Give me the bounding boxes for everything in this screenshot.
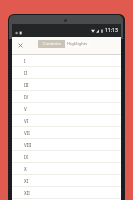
staticText: IX <box>24 154 29 160</box>
button[interactable]: X <box>12 163 121 175</box>
staticText: VII <box>24 130 30 136</box>
staticText: IV <box>24 94 29 100</box>
button[interactable]: I <box>12 55 121 67</box>
staticText: III <box>24 82 29 88</box>
staticText: X <box>24 166 27 172</box>
staticText: Highlights <box>67 41 88 47</box>
button[interactable]: XII <box>12 187 121 199</box>
staticText: VIII <box>24 142 32 148</box>
staticText: I <box>24 58 26 64</box>
staticText: Contents <box>43 41 61 47</box>
button[interactable]: VI <box>12 115 121 127</box>
button[interactable]: XI <box>12 175 121 187</box>
staticText: V <box>24 106 27 112</box>
button[interactable]: IX <box>12 151 121 163</box>
button[interactable]: Contents <box>38 40 65 48</box>
button[interactable]: VII <box>12 127 121 139</box>
staticText: XII <box>24 190 30 196</box>
staticText: XI <box>24 178 29 184</box>
button[interactable]: V <box>12 103 121 115</box>
button[interactable]: IV <box>12 91 121 103</box>
button[interactable]: VIII <box>12 139 121 151</box>
button[interactable]: II <box>12 67 121 79</box>
staticText: VI <box>24 118 29 124</box>
button[interactable]: III <box>12 79 121 91</box>
button[interactable]: Close <box>15 40 26 51</box>
staticText: II <box>24 70 28 76</box>
staticText: 11:13 <box>105 27 118 34</box>
button[interactable]: Highlights <box>65 40 89 48</box>
